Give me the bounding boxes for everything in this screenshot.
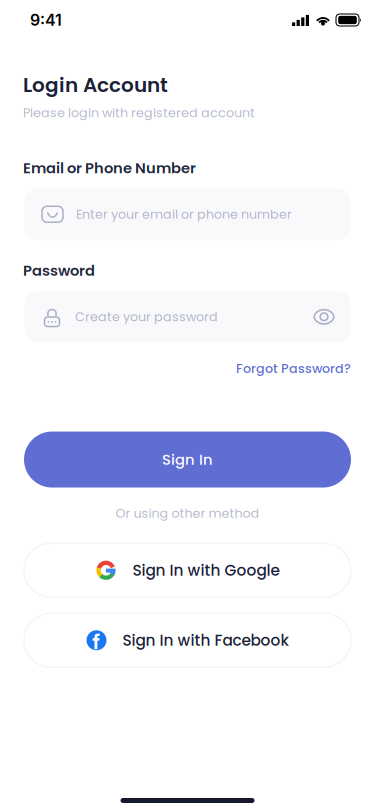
staticText: 9:41 xyxy=(30,10,62,30)
staticText: Enter your email or phone number xyxy=(76,205,292,223)
staticText: Please login with registered account xyxy=(23,104,255,122)
staticText: Or using other method xyxy=(115,504,259,522)
button[interactable]: Sign In with Facebook xyxy=(24,613,351,667)
staticText: Sign In with Facebook xyxy=(122,629,288,651)
button[interactable]: Sign In xyxy=(24,431,351,487)
staticText: Login Account xyxy=(23,71,168,99)
staticText: Sign In with Google xyxy=(132,559,279,581)
staticText: Create your password xyxy=(75,308,218,326)
staticText: Forgot Password? xyxy=(236,360,351,377)
staticText: Sign In xyxy=(162,449,213,470)
button[interactable]: Show password xyxy=(313,307,351,327)
staticText: Email or Phone Number xyxy=(23,158,196,178)
staticText: Password xyxy=(23,260,95,281)
button[interactable]: Forgot Password? xyxy=(236,360,351,377)
button[interactable]: Sign In with Google xyxy=(24,543,351,597)
